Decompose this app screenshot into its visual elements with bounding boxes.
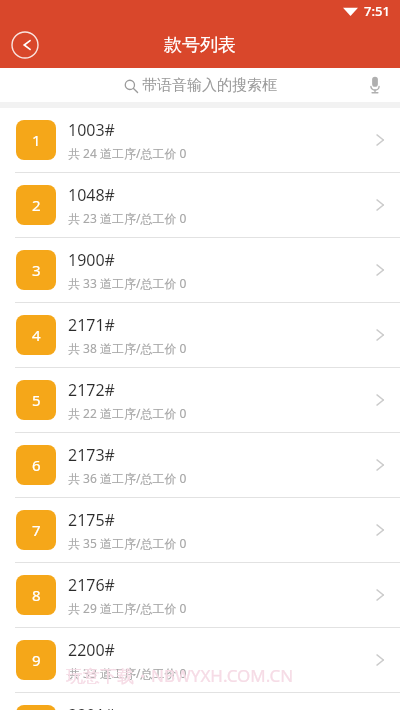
button[interactable]: 10 <box>0 693 400 710</box>
staticText: 1 <box>32 130 41 150</box>
button[interactable]: 7 <box>0 498 400 562</box>
staticText: 3 <box>32 260 41 280</box>
staticText: 2172# <box>68 379 115 401</box>
staticText: 1003# <box>68 119 115 141</box>
button[interactable]: 2 <box>0 173 400 237</box>
staticText: 共 38 道工序/总工价 0 <box>68 340 187 356</box>
staticText: 共 33 道工序/总工价 0 <box>68 275 187 291</box>
staticText: 9 <box>32 650 41 670</box>
button[interactable]: 5 <box>0 368 400 432</box>
staticText: 7:51 <box>364 2 390 20</box>
staticText: 1900# <box>68 249 115 271</box>
staticText: 2175# <box>68 509 115 531</box>
staticText: 5 <box>32 390 41 410</box>
staticText: 共 35 道工序/总工价 0 <box>68 535 187 551</box>
button[interactable]: Back <box>8 28 42 62</box>
staticText: 6 <box>32 455 41 475</box>
staticText: 玩意下载・NBWYXH.COM.CN <box>66 664 294 687</box>
staticText: 共 23 道工序/总工价 0 <box>68 210 187 226</box>
staticText: 共 33 道工序/总工价 0 <box>68 665 187 681</box>
staticText: 带语音输入的搜索框 <box>142 76 277 95</box>
button[interactable]: 1 <box>0 108 400 172</box>
button[interactable]: 8 <box>0 563 400 627</box>
staticText: 2176# <box>68 574 115 596</box>
staticText: 2171# <box>68 314 115 336</box>
button[interactable]: Voice input <box>360 70 390 100</box>
staticText: 8 <box>32 585 41 605</box>
button[interactable]: 3 <box>0 238 400 302</box>
staticText: 4 <box>32 325 41 345</box>
staticText: 7 <box>32 520 41 540</box>
staticText: 共 24 道工序/总工价 0 <box>68 145 187 161</box>
staticText: 2200# <box>68 639 115 661</box>
button[interactable]: 6 <box>0 433 400 497</box>
staticText: 2173# <box>68 444 115 466</box>
button[interactable]: 4 <box>0 303 400 367</box>
staticText: 1048# <box>68 184 115 206</box>
staticText: 共 29 道工序/总工价 0 <box>68 600 187 616</box>
staticText: 2 <box>32 195 41 215</box>
button[interactable]: 9 <box>0 628 400 692</box>
staticText: 款号列表 <box>164 34 236 57</box>
staticText: 共 36 道工序/总工价 0 <box>68 470 187 486</box>
staticText: 共 22 道工序/总工价 0 <box>68 405 187 421</box>
staticText: 2201# <box>68 704 115 710</box>
